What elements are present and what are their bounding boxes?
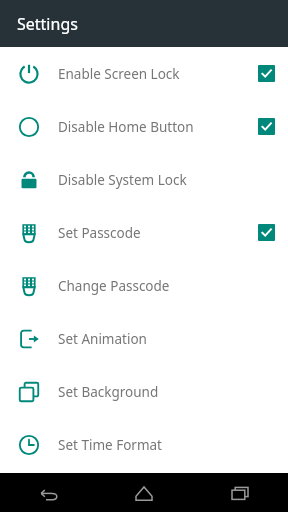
button[interactable]: Back — [0, 473, 96, 512]
button[interactable]: Checked — [258, 224, 275, 241]
button[interactable]: Disable Home Button — [0, 100, 288, 153]
staticText: Settings — [17, 13, 78, 35]
staticText: Enable Screen Lock — [58, 65, 244, 83]
button[interactable]: Enable Screen Lock — [0, 47, 288, 100]
staticText: Set Background — [58, 383, 244, 401]
staticText: Change Passcode — [58, 277, 244, 295]
staticText: Set Time Format — [58, 436, 244, 454]
button[interactable]: Set Time Format — [0, 418, 288, 471]
button[interactable]: Disable System Lock — [0, 153, 288, 206]
button[interactable]: Set Passcode — [0, 206, 288, 259]
staticText: Set Passcode — [58, 224, 244, 242]
button[interactable]: Checked — [258, 118, 275, 135]
staticText: Disable Home Button — [58, 118, 244, 136]
button[interactable]: Home — [96, 473, 192, 512]
staticText: Disable System Lock — [58, 171, 244, 189]
button[interactable]: Set Background — [0, 365, 288, 418]
staticText: Set Animation — [58, 330, 244, 348]
button[interactable]: Recent apps — [192, 473, 288, 512]
button[interactable]: Set Animation — [0, 312, 288, 365]
button[interactable]: Change Passcode — [0, 259, 288, 312]
button[interactable]: Checked — [258, 65, 275, 82]
